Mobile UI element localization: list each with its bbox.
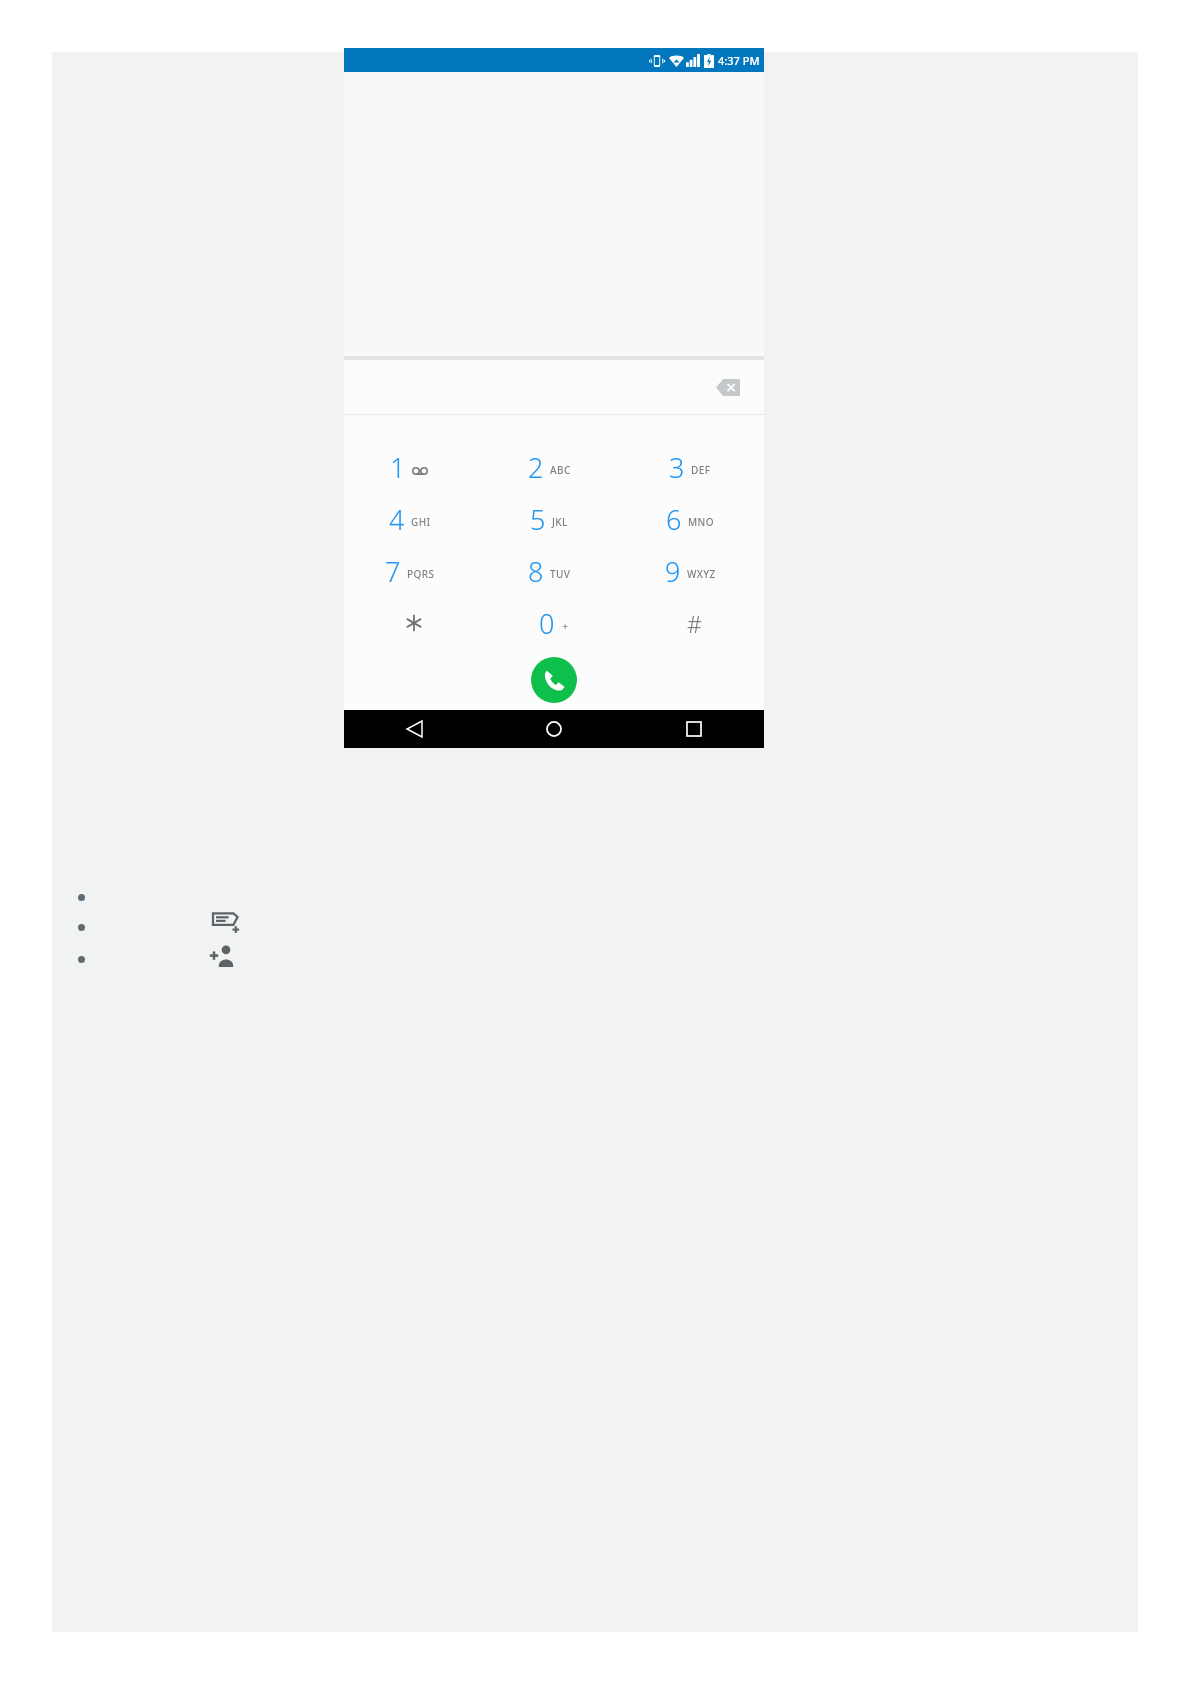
- button[interactable]: 9: [624, 545, 764, 597]
- staticText: WXYZ: [687, 567, 716, 581]
- staticText: 3: [669, 449, 685, 486]
- staticText: 4:37 PM: [718, 53, 760, 68]
- staticText: 8: [528, 553, 544, 590]
- button[interactable]: 0: [484, 597, 624, 649]
- staticText: ABC: [550, 463, 571, 477]
- button[interactable]: [344, 597, 484, 649]
- staticText: 1: [390, 449, 406, 486]
- button[interactable]: #: [624, 597, 764, 649]
- button[interactable]: Back: [344, 710, 484, 748]
- button[interactable]: Recent apps: [624, 710, 764, 748]
- staticText: 5: [530, 501, 546, 538]
- staticText: 7: [385, 553, 401, 590]
- button[interactable]: 5: [484, 493, 624, 545]
- button[interactable]: New message: [208, 906, 242, 940]
- button[interactable]: Backspace: [708, 367, 748, 407]
- staticText: 2: [528, 449, 544, 486]
- staticText: 0: [539, 605, 555, 642]
- staticText: 6: [666, 501, 682, 538]
- button[interactable]: 6: [624, 493, 764, 545]
- button[interactable]: Call: [531, 657, 577, 703]
- staticText: 4: [389, 501, 405, 538]
- staticText: GHI: [411, 515, 431, 529]
- button[interactable]: 2: [484, 441, 624, 493]
- button[interactable]: 1: [344, 441, 484, 493]
- staticText: +: [562, 618, 569, 633]
- staticText: JKL: [552, 515, 568, 529]
- button[interactable]: 3: [624, 441, 764, 493]
- button[interactable]: 4: [344, 493, 484, 545]
- staticText: DEF: [691, 463, 711, 477]
- button[interactable]: Home: [484, 710, 624, 748]
- staticText: MNO: [688, 515, 714, 529]
- staticText: TUV: [550, 567, 571, 581]
- staticText: #: [687, 608, 702, 639]
- button[interactable]: Add contact: [206, 938, 240, 972]
- staticText: 9: [665, 553, 681, 590]
- button[interactable]: 8: [484, 545, 624, 597]
- button[interactable]: 7: [344, 545, 484, 597]
- staticText: PQRS: [407, 567, 435, 581]
